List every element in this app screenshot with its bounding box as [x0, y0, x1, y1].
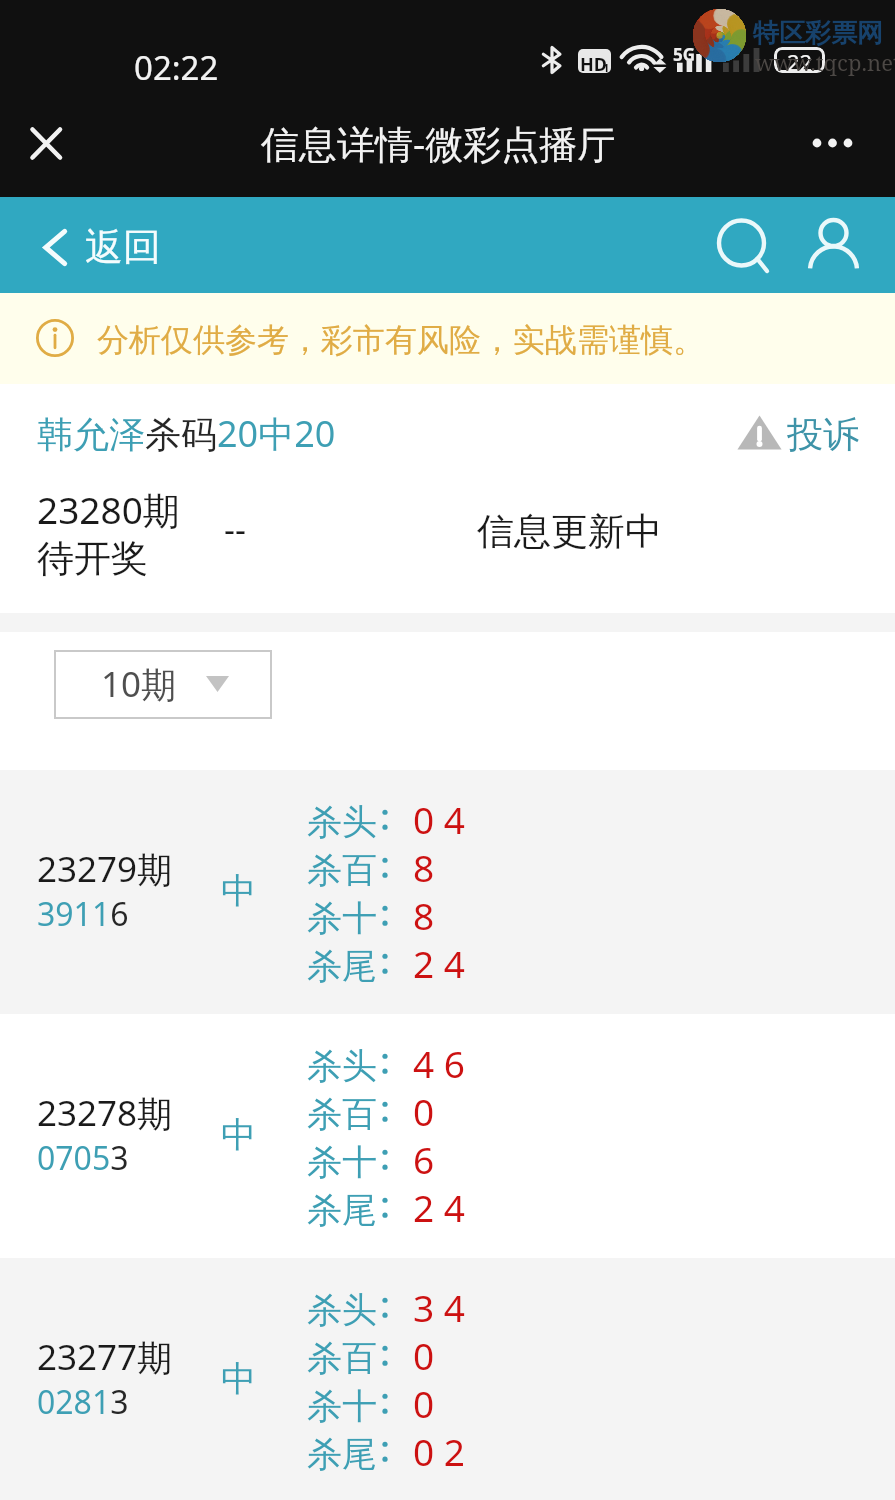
staticText: 韩允泽杀码20中20 — [37, 409, 336, 458]
staticText: 中 — [221, 869, 256, 913]
button[interactable]: Profile — [802, 213, 866, 277]
button[interactable]: 投诉 — [731, 404, 865, 461]
staticText: 39116 — [37, 892, 129, 936]
staticText: 22 — [787, 47, 813, 73]
staticText: 2 4 — [413, 938, 465, 988]
staticText: 返回 — [85, 223, 161, 271]
staticText: 10期 — [101, 660, 177, 708]
staticText: 0 — [413, 1086, 435, 1136]
button[interactable]: 10期 — [54, 650, 272, 719]
button[interactable]: 23277期 — [0, 1258, 895, 1500]
staticText: 02813 — [37, 1380, 129, 1424]
staticText: 中 — [221, 1357, 256, 1401]
staticText: 3 4 — [413, 1282, 465, 1332]
staticText: 杀十 — [307, 1140, 377, 1184]
staticText: 杀尾 — [307, 1432, 377, 1476]
staticText: 投诉 — [787, 412, 859, 457]
staticText: 23279期 — [37, 845, 173, 893]
staticText: -- — [224, 506, 246, 552]
staticText: 杀十 — [307, 896, 377, 940]
staticText: 中 — [221, 1113, 256, 1157]
staticText: 23278期 — [37, 1089, 173, 1137]
staticText: 6 — [413, 1134, 435, 1184]
staticText: 07053 — [37, 1136, 129, 1180]
staticText: 信息更新中 — [477, 508, 662, 555]
staticText: 1 — [603, 60, 610, 73]
staticText: 杀尾 — [307, 944, 377, 988]
staticText: 杀百 — [307, 848, 377, 892]
staticText: 杀百 — [307, 1092, 377, 1136]
staticText: 杀十 — [307, 1384, 377, 1428]
staticText: 8 — [413, 842, 435, 892]
staticText: 特区彩票网 — [753, 17, 883, 50]
staticText: 0 4 — [413, 794, 465, 844]
staticText: 杀头 — [307, 1288, 377, 1332]
staticText: www.tqcp.net — [755, 47, 895, 77]
button[interactable]: Close — [20, 117, 80, 177]
staticText: 杀百 — [307, 1336, 377, 1380]
staticText: 0 — [413, 1378, 435, 1428]
button[interactable]: 23279期 — [0, 770, 895, 1014]
staticText: 02:22 — [134, 45, 219, 90]
staticText: 杀头 — [307, 800, 377, 844]
staticText: 0 — [413, 1330, 435, 1380]
staticText: 杀尾 — [307, 1188, 377, 1232]
button[interactable]: 返回 — [30, 217, 183, 277]
staticText: 2 4 — [413, 1182, 465, 1232]
staticText: 8 — [413, 890, 435, 940]
staticText: 4 6 — [413, 1038, 465, 1088]
staticText: 待开奖 — [37, 535, 148, 582]
button[interactable]: More options — [819, 117, 879, 177]
button[interactable]: Search — [712, 213, 776, 277]
staticText: 分析仅供参考，彩市有风险，实战需谨慎。 — [97, 320, 705, 360]
staticText: 23277期 — [37, 1333, 173, 1381]
staticText: 23280期 — [37, 484, 180, 535]
staticText: 杀头 — [307, 1044, 377, 1088]
button[interactable]: 23278期 — [0, 1014, 895, 1258]
staticText: 信息详情-微彩点播厅 — [261, 117, 616, 169]
staticText: HD — [580, 52, 607, 73]
staticText: 0 2 — [413, 1426, 465, 1476]
staticText: 5G — [673, 43, 696, 66]
